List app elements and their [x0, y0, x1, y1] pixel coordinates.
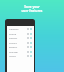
button[interactable]: Network [7, 26, 34, 31]
button[interactable]: About [7, 53, 34, 58]
staticText: Display [9, 36, 18, 39]
staticText: Sound [9, 32, 17, 35]
button[interactable]: Storage [7, 49, 34, 54]
button[interactable]: Battery [7, 44, 34, 49]
staticText: Battery [9, 45, 18, 48]
staticText: user features [2, 9, 62, 13]
staticText: Storage [9, 50, 18, 53]
button[interactable]: Sound [7, 31, 34, 36]
button[interactable]: Privacy [7, 40, 34, 45]
staticText: Privacy [9, 41, 17, 44]
staticText: Save your [2, 5, 62, 9]
button[interactable]: Display [7, 35, 34, 40]
staticText: About [9, 54, 16, 57]
staticText: Network [9, 27, 19, 30]
